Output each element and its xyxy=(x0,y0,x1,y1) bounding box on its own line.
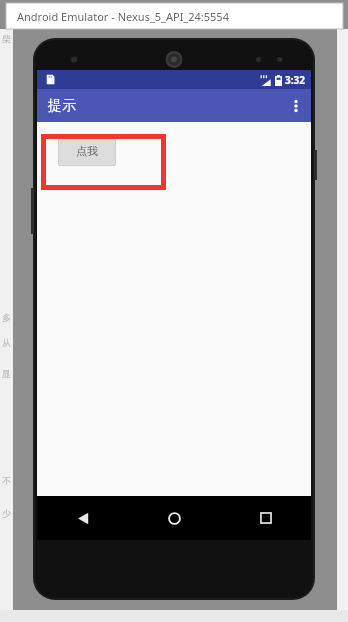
button[interactable]: Back xyxy=(37,496,129,540)
staticText: 3:32 xyxy=(285,73,305,87)
staticText: 多 xyxy=(2,312,11,323)
staticText: 柴 xyxy=(2,33,11,44)
staticText: 显 xyxy=(2,368,11,379)
button[interactable]: Recent apps xyxy=(220,496,311,540)
staticText: Android Emulator - Nexus_5_API_24:5554 xyxy=(17,9,229,24)
staticText: 少 xyxy=(2,508,11,519)
staticText: 点我 xyxy=(76,144,98,158)
staticText: 不 xyxy=(2,475,11,486)
button[interactable]: 点我 xyxy=(58,136,116,166)
button[interactable]: Home xyxy=(129,496,220,540)
button[interactable]: More options xyxy=(281,91,311,121)
staticText: 提示 xyxy=(48,97,76,115)
staticText: 从 xyxy=(2,337,11,348)
